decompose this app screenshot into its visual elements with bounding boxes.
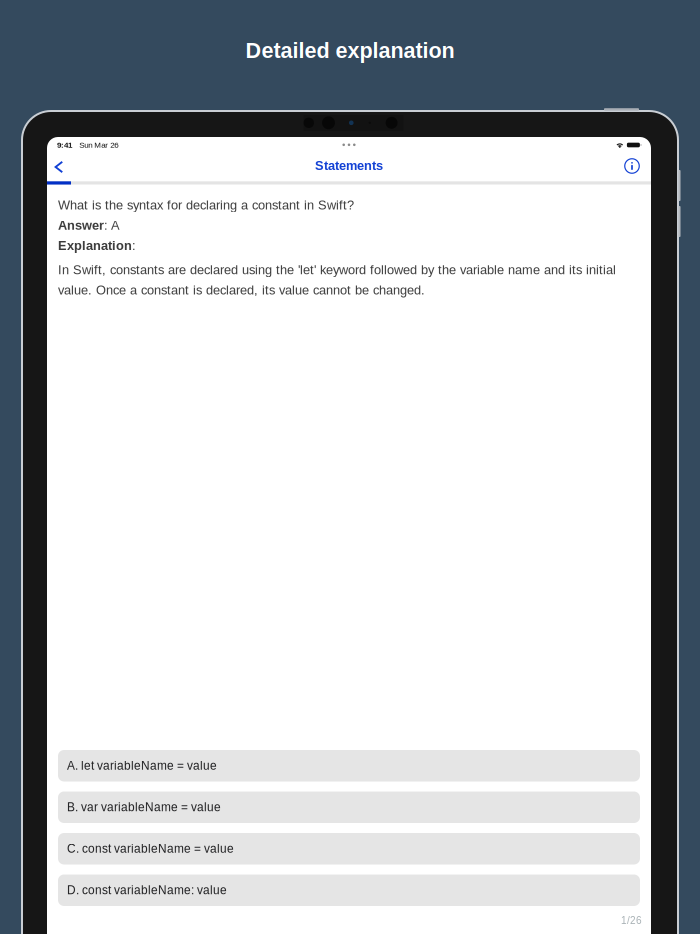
staticText: Explanation: <box>58 238 136 252</box>
staticText: Statements <box>315 158 383 173</box>
staticText: Sun Mar 26 <box>79 140 118 149</box>
staticText: D. const variableName: value <box>67 884 227 897</box>
staticText: C. const variableName = value <box>67 842 234 855</box>
staticText: A. let variableName = value <box>67 759 217 772</box>
staticText: In Swift, constants are declared using t… <box>58 263 616 297</box>
button[interactable]: D. const variableName: value <box>58 874 640 906</box>
staticText: 9:41 <box>57 140 72 149</box>
staticText: What is the syntax for declaring a const… <box>58 198 354 212</box>
button[interactable]: B. var variableName = value <box>58 791 640 823</box>
button[interactable]: Back <box>46 154 72 180</box>
staticText: Detailed explanation <box>245 38 454 62</box>
button[interactable]: Information <box>619 153 645 179</box>
button[interactable]: C. const variableName = value <box>58 833 640 864</box>
staticText: 1/26 <box>621 915 642 926</box>
button[interactable]: A. let variableName = value <box>58 750 640 781</box>
staticText: Answer: A <box>58 218 120 232</box>
staticText: B. var variableName = value <box>67 801 221 814</box>
